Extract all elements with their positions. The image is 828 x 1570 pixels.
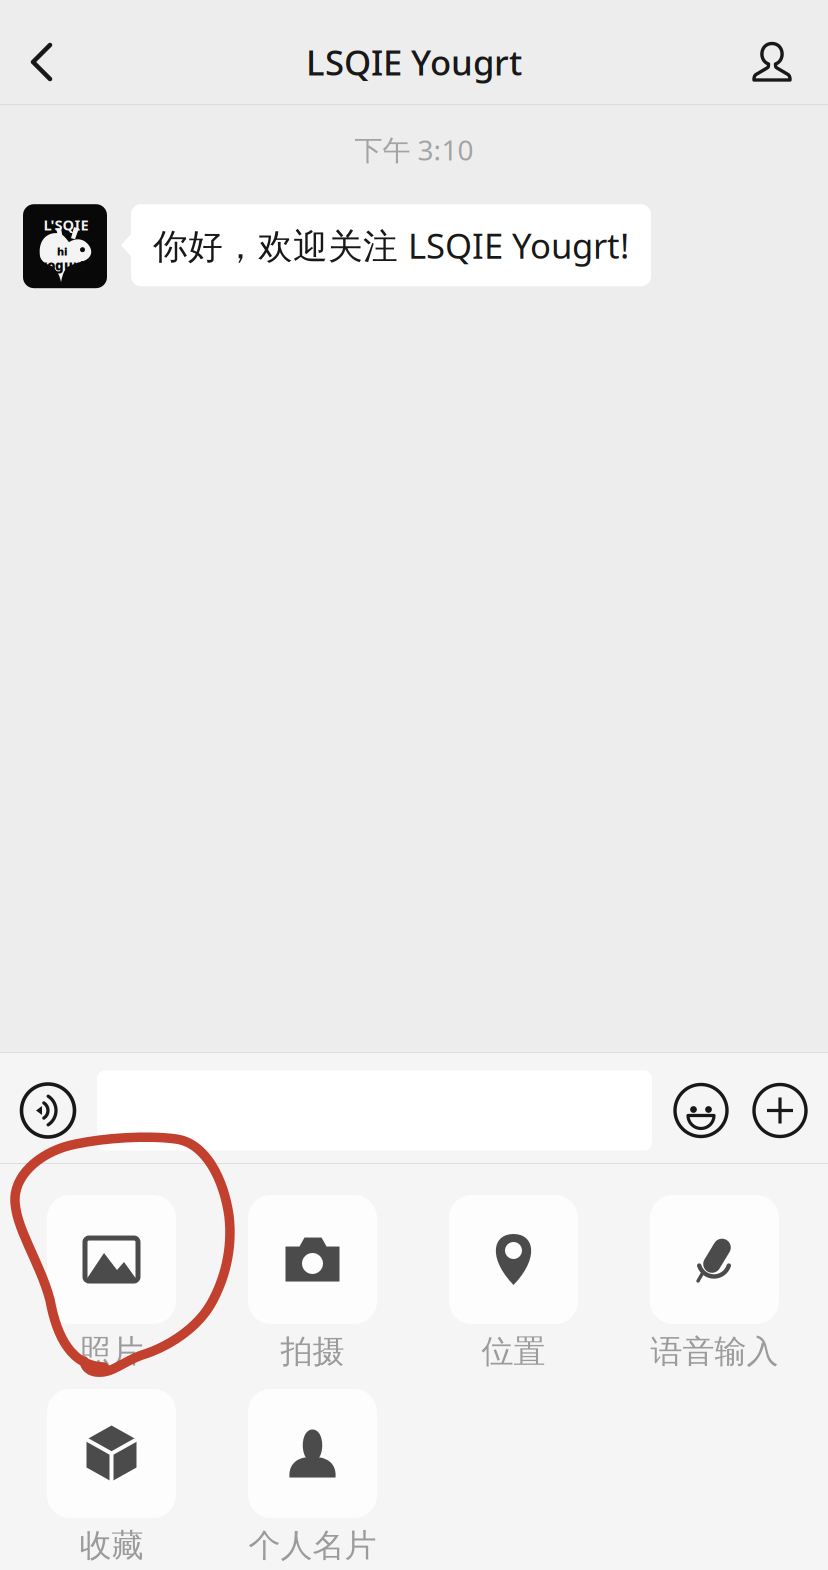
staticText: LSQIE Yougrt xyxy=(306,39,522,85)
staticText: 位置 xyxy=(481,1332,545,1371)
button[interactable]: Contact info xyxy=(718,20,828,104)
button[interactable]: More xyxy=(753,1083,807,1137)
button[interactable]: 收藏 xyxy=(11,1389,212,1570)
staticText: 收藏 xyxy=(79,1526,143,1565)
staticText: 你好，欢迎关注 LSQIE Yougrt! xyxy=(153,222,629,268)
staticText: 照片 xyxy=(79,1332,143,1371)
button[interactable]: 位置 xyxy=(413,1195,614,1389)
staticText: L'SQIE xyxy=(43,215,88,235)
button[interactable]: Back xyxy=(0,20,84,104)
staticText: 语音输入 xyxy=(650,1332,778,1371)
staticText: 拍摄 xyxy=(280,1332,344,1371)
button[interactable]: Voice input xyxy=(21,1083,75,1137)
button[interactable]: 语音输入 xyxy=(614,1195,815,1389)
button[interactable]: 照片 xyxy=(11,1195,212,1389)
button[interactable]: Emoji xyxy=(674,1083,728,1137)
button[interactable]: 拍摄 xyxy=(212,1195,413,1389)
staticText: 下午 3:10 xyxy=(354,131,473,168)
button[interactable]: 个人名片 xyxy=(212,1389,413,1570)
staticText: hi xyxy=(57,244,67,258)
staticText: 个人名片 xyxy=(248,1526,376,1565)
staticText: yogurt xyxy=(39,256,85,274)
